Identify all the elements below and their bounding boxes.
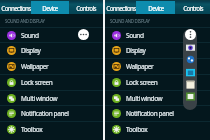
staticText: Connections (106, 4, 136, 12)
staticText: Display (126, 46, 146, 55)
button[interactable]: App (186, 68, 195, 77)
button[interactable]: More options (185, 29, 196, 40)
staticText: Device (42, 4, 58, 12)
staticText: Wallpaper (126, 62, 154, 71)
staticText: Toolbox (126, 125, 148, 134)
button[interactable]: Connections (105, 1, 136, 14)
button[interactable]: Sound (105, 27, 210, 43)
staticText: Connections (1, 4, 31, 12)
staticText: Toolbox (21, 125, 43, 134)
button[interactable]: Controls (175, 1, 210, 14)
button[interactable]: Connections (0, 1, 31, 14)
staticText: Controls (183, 4, 203, 12)
button[interactable]: Lock screen (105, 74, 210, 90)
button[interactable]: Controls (69, 1, 103, 14)
button[interactable]: Toolbox (105, 121, 210, 137)
button[interactable]: Lock screen (0, 74, 103, 90)
button[interactable]: Notification panel (0, 105, 103, 121)
button[interactable]: More options (78, 29, 89, 40)
staticText: Multi window (21, 94, 58, 103)
staticText: Notification panel (126, 109, 174, 118)
staticText: Controls (76, 4, 96, 12)
button[interactable]: Display (0, 42, 103, 58)
button[interactable]: App (186, 55, 195, 64)
button[interactable]: App (186, 80, 195, 89)
staticText: Wallpaper (21, 62, 49, 71)
staticText: Lock screen (21, 78, 53, 87)
staticText: Notification panel (21, 109, 69, 118)
button[interactable]: Toolbox (0, 121, 103, 137)
staticText: Sound (21, 31, 39, 40)
button[interactable]: Wallpaper (0, 58, 103, 74)
staticText: Lock screen (126, 78, 158, 87)
staticText: SOUND AND DISPLAY (5, 18, 45, 24)
button[interactable]: Device (31, 1, 69, 14)
staticText: Multi window (126, 94, 163, 103)
button[interactable]: App (186, 92, 195, 101)
staticText: Display (21, 46, 41, 55)
button[interactable]: Display (105, 42, 210, 58)
button[interactable]: Wallpaper (105, 58, 210, 74)
staticText: Sound (126, 31, 144, 40)
button[interactable]: Notification panel (105, 105, 210, 121)
button[interactable]: Sound (0, 27, 103, 43)
button[interactable]: Device (136, 1, 175, 14)
button[interactable]: App (186, 43, 195, 52)
button[interactable]: Multi window (0, 90, 103, 106)
button[interactable]: Multi window (105, 90, 210, 106)
staticText: Device (148, 4, 164, 12)
staticText: SOUND AND DISPLAY (110, 18, 150, 24)
